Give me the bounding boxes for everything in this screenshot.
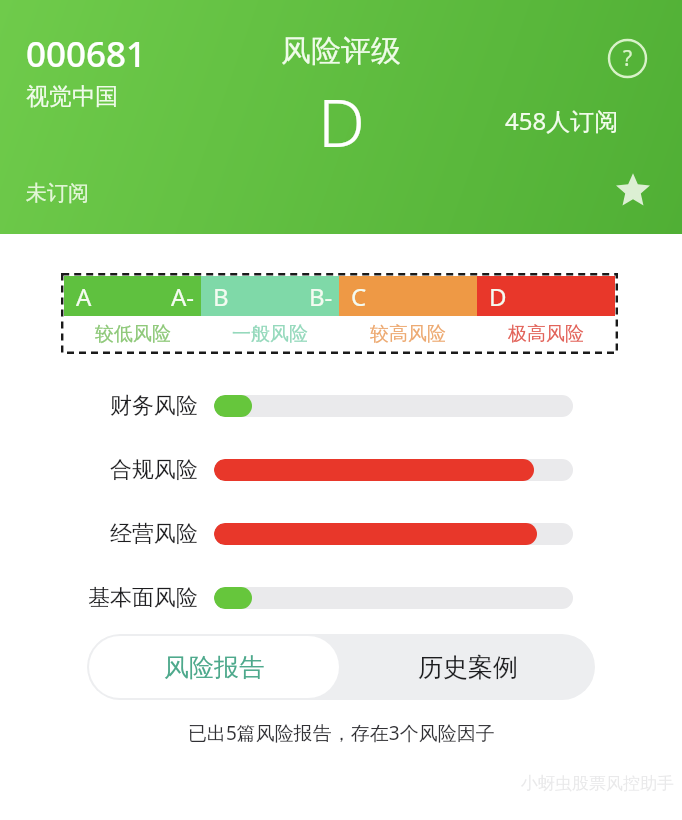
button[interactable]: 合规风险	[0, 456, 682, 484]
button[interactable]: 未订阅	[26, 180, 89, 206]
staticText: 一般风险	[232, 322, 308, 346]
staticText: B-	[309, 280, 333, 313]
staticText: 较低风险	[95, 322, 171, 346]
staticText: 000681	[26, 30, 147, 78]
button[interactable]: Favourite	[614, 171, 652, 209]
staticText: ?	[623, 44, 633, 73]
staticText: 财务风险	[110, 392, 198, 420]
staticText: D	[489, 280, 507, 313]
button[interactable]: 财务风险	[0, 392, 682, 420]
staticText: 合规风险	[110, 456, 198, 484]
staticText: 较高风险	[370, 322, 446, 346]
staticText: 历史案例	[418, 652, 518, 683]
staticText: 458人订阅	[505, 104, 619, 137]
staticText: 极高风险	[508, 322, 584, 346]
staticText: 已出5篇风险报告，存在3个风险因子	[188, 720, 495, 746]
staticText: B	[213, 280, 229, 313]
staticText: C	[351, 280, 367, 313]
button[interactable]: 基本面风险	[0, 584, 682, 612]
button[interactable]: 经营风险	[0, 520, 682, 548]
staticText: 经营风险	[110, 520, 198, 548]
button[interactable]: 风险报告	[89, 636, 339, 698]
staticText: D	[318, 76, 365, 166]
staticText: A	[76, 280, 92, 313]
staticText: 视觉中国	[26, 82, 118, 111]
staticText: 基本面风险	[88, 584, 198, 612]
button[interactable]: Help	[607, 38, 648, 79]
staticText: 风险评级	[281, 32, 401, 70]
staticText: A-	[171, 280, 195, 313]
staticText: 小蚜虫股票风控助手	[521, 773, 674, 794]
button[interactable]: A	[61, 273, 618, 354]
staticText: 未订阅	[26, 180, 89, 206]
button[interactable]: 历史案例	[341, 634, 595, 700]
staticText: 风险报告	[164, 652, 264, 683]
